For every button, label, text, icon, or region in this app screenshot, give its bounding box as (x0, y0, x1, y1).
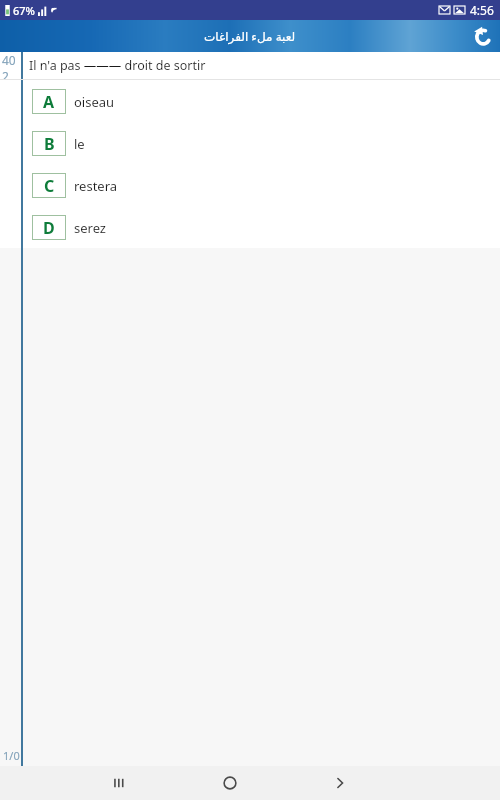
button[interactable]: Home (200, 766, 260, 800)
staticText: le (74, 135, 85, 153)
staticText: Il n'a pas ——— droit de sortir (29, 57, 206, 74)
staticText: لعبة ملء الفراغات (204, 28, 296, 44)
staticText: restera (74, 177, 118, 195)
staticText: serez (74, 219, 106, 237)
staticText: 67% (13, 3, 35, 18)
staticText: D (43, 217, 55, 239)
staticText: 402 (2, 52, 21, 79)
staticText: C (44, 175, 55, 197)
button[interactable]: B (0, 131, 500, 156)
button[interactable]: D (0, 215, 500, 240)
staticText: B (44, 133, 55, 155)
staticText: A (43, 91, 55, 113)
staticText: oiseau (74, 93, 115, 111)
button[interactable]: Back (310, 766, 370, 800)
button[interactable]: Recent apps (90, 766, 150, 800)
staticText: 1/0 (3, 748, 20, 763)
button[interactable]: C (0, 173, 500, 198)
button[interactable]: Back (466, 20, 500, 52)
button[interactable]: A (0, 89, 500, 114)
button[interactable]: 402 (0, 52, 500, 79)
staticText: 4:56 (470, 2, 494, 18)
